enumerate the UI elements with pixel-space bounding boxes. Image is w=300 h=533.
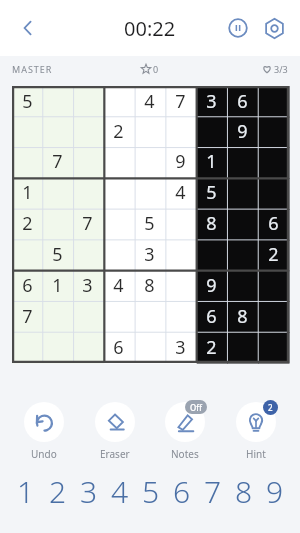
button[interactable] (42, 116, 72, 146)
button[interactable]: 4 (104, 471, 135, 511)
button[interactable] (165, 301, 196, 332)
button[interactable]: 5 (196, 177, 227, 208)
button[interactable] (165, 208, 196, 239)
button[interactable] (258, 301, 289, 332)
button[interactable] (227, 239, 258, 270)
button[interactable]: 6 (227, 86, 258, 116)
button[interactable] (103, 86, 134, 116)
button[interactable]: 9 (259, 471, 290, 511)
button[interactable]: 8 (196, 208, 227, 239)
button[interactable]: 5 (134, 208, 165, 239)
button[interactable] (103, 177, 134, 208)
button[interactable]: 3 (73, 471, 104, 511)
button[interactable]: 3 (196, 86, 227, 116)
button[interactable]: 1 (42, 270, 72, 301)
button[interactable]: Off (153, 400, 217, 461)
button[interactable] (72, 239, 103, 270)
button[interactable]: 4 (103, 270, 134, 301)
button[interactable]: 7 (12, 301, 42, 332)
button[interactable]: 5 (12, 86, 42, 116)
button[interactable] (227, 270, 258, 301)
button[interactable] (227, 177, 258, 208)
button[interactable]: 4 (134, 86, 165, 116)
button[interactable]: 9 (227, 116, 258, 146)
button[interactable]: 6 (166, 471, 197, 511)
button[interactable]: Undo (12, 400, 76, 461)
button[interactable] (12, 116, 42, 146)
button[interactable]: 7 (42, 146, 72, 177)
staticText: 6 (22, 273, 33, 298)
button[interactable]: 9 (196, 270, 227, 301)
button[interactable]: 1 (196, 146, 227, 177)
button[interactable] (72, 332, 103, 363)
button[interactable] (196, 239, 227, 270)
button[interactable] (42, 177, 72, 208)
button[interactable]: 6 (103, 332, 134, 363)
staticText: 5 (142, 471, 160, 511)
button[interactable] (103, 146, 134, 177)
button[interactable] (42, 332, 72, 363)
button[interactable] (72, 146, 103, 177)
button[interactable] (258, 146, 289, 177)
button[interactable]: 9 (165, 146, 196, 177)
button[interactable]: 8 (134, 270, 165, 301)
button[interactable] (72, 301, 103, 332)
button[interactable]: 1 (12, 177, 42, 208)
button[interactable]: 6 (12, 270, 42, 301)
button[interactable]: 6 (196, 301, 227, 332)
button[interactable] (72, 116, 103, 146)
button[interactable] (12, 332, 42, 363)
button[interactable]: 2 (224, 400, 288, 461)
button[interactable] (134, 177, 165, 208)
button[interactable]: 8 (227, 301, 258, 332)
button[interactable] (103, 208, 134, 239)
button[interactable] (258, 86, 289, 116)
button[interactable] (258, 332, 289, 363)
button[interactable] (227, 332, 258, 363)
button[interactable]: 8 (228, 471, 259, 511)
button[interactable] (165, 116, 196, 146)
button[interactable] (196, 116, 227, 146)
button[interactable]: 2 (12, 208, 42, 239)
button[interactable] (134, 146, 165, 177)
button[interactable]: 6 (258, 208, 289, 239)
button[interactable] (134, 301, 165, 332)
button[interactable]: 7 (72, 208, 103, 239)
button[interactable] (258, 270, 289, 301)
button[interactable]: 7 (197, 471, 228, 511)
button[interactable] (227, 208, 258, 239)
button[interactable] (42, 86, 72, 116)
button[interactable] (134, 116, 165, 146)
button[interactable] (165, 239, 196, 270)
button[interactable]: 5 (135, 471, 166, 511)
button[interactable]: 1 (10, 471, 42, 511)
button[interactable]: 5 (42, 239, 72, 270)
button[interactable] (227, 146, 258, 177)
button[interactable]: 2 (42, 471, 73, 511)
button[interactable]: Pause (220, 10, 256, 46)
button[interactable] (12, 239, 42, 270)
button[interactable] (72, 86, 103, 116)
button[interactable] (42, 208, 72, 239)
button[interactable]: Settings (256, 10, 292, 46)
button[interactable] (42, 301, 72, 332)
button[interactable]: 3 (134, 239, 165, 270)
button[interactable] (165, 270, 196, 301)
button[interactable] (258, 177, 289, 208)
button[interactable] (72, 177, 103, 208)
button[interactable]: 2 (258, 239, 289, 270)
button[interactable]: 4 (165, 177, 196, 208)
staticText: 8 (144, 273, 155, 298)
button[interactable]: 3 (72, 270, 103, 301)
button[interactable]: 2 (196, 332, 227, 363)
button[interactable] (103, 301, 134, 332)
button[interactable] (12, 146, 42, 177)
button[interactable] (134, 332, 165, 363)
button[interactable] (103, 239, 134, 270)
button[interactable] (258, 116, 289, 146)
button[interactable]: 3 (165, 332, 196, 363)
button[interactable]: 7 (165, 86, 196, 116)
button[interactable]: Eraser (83, 400, 147, 461)
button[interactable]: Back (8, 8, 48, 48)
button[interactable]: 2 (103, 116, 134, 146)
